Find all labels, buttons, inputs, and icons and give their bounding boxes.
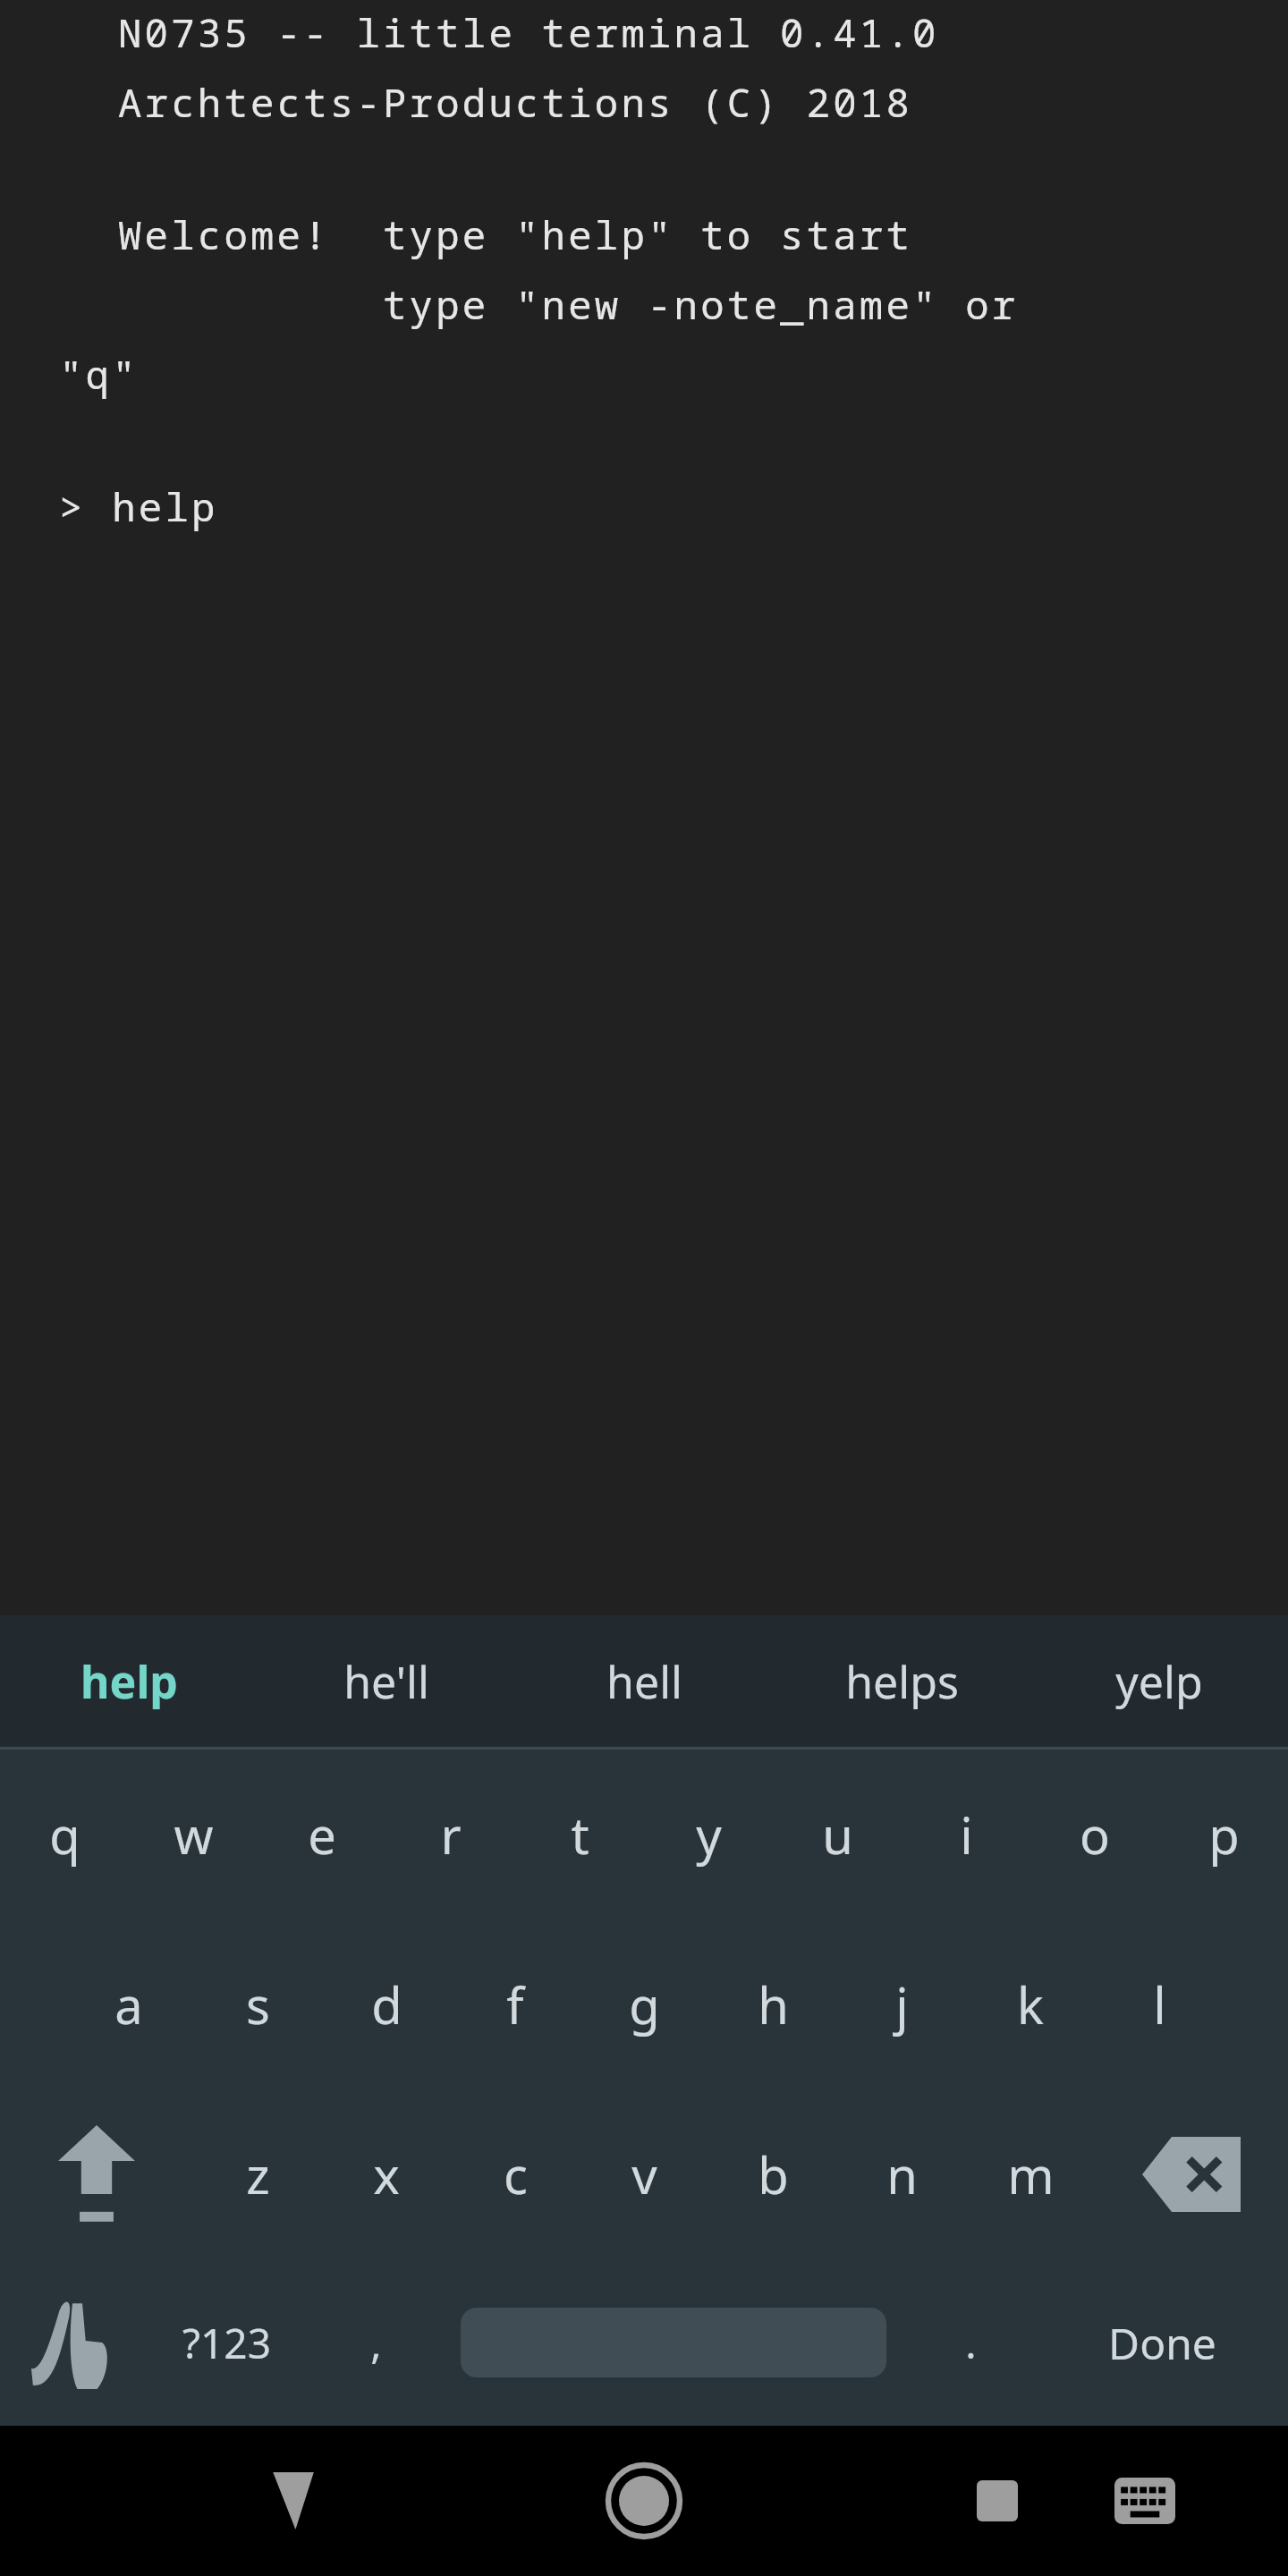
button[interactable]: c	[451, 2089, 580, 2259]
staticText: v	[631, 2140, 657, 2208]
button[interactable]: m	[966, 2089, 1095, 2259]
button[interactable]: w	[129, 1750, 258, 1919]
button[interactable]: hell	[515, 1615, 773, 1747]
staticText: i	[960, 1801, 973, 1868]
staticText: help	[80, 1651, 178, 1712]
button[interactable]: Recent apps	[944, 2447, 1051, 2555]
button[interactable]: i	[902, 1750, 1030, 1919]
button[interactable]: u	[773, 1750, 902, 1919]
staticText: he'll	[343, 1651, 429, 1712]
staticText: h	[758, 1970, 789, 2038]
staticText: l	[1153, 1970, 1166, 2038]
button[interactable]: y	[644, 1750, 773, 1919]
staticText: u	[822, 1801, 853, 1868]
button[interactable]: Shift	[0, 2089, 193, 2259]
button[interactable]: e	[258, 1750, 386, 1919]
button[interactable]: q	[0, 1750, 129, 1919]
staticText: "q"	[59, 347, 139, 401]
button[interactable]: Hide keyboard	[240, 2447, 347, 2555]
button[interactable]: f	[451, 1919, 580, 2089]
staticText: n	[886, 2140, 918, 2208]
staticText: c	[504, 2140, 528, 2208]
staticText: s	[246, 1970, 270, 2038]
staticText: k	[1017, 1970, 1044, 2038]
staticText: ?123	[182, 2315, 271, 2371]
button[interactable]: ,	[309, 2259, 442, 2426]
staticText: Welcome! type "help" to start	[118, 208, 912, 261]
button[interactable]: k	[966, 1919, 1095, 2089]
staticText: d	[371, 1970, 402, 2038]
staticText: w	[174, 1801, 214, 1868]
staticText: t	[571, 1801, 589, 1868]
staticText: m	[1007, 2140, 1055, 2208]
button[interactable]: b	[708, 2089, 837, 2259]
staticText: f	[506, 1970, 524, 2038]
staticText: .	[965, 2315, 977, 2371]
button[interactable]: d	[322, 1919, 451, 2089]
staticText: o	[1080, 1801, 1110, 1868]
button[interactable]: v	[580, 2089, 708, 2259]
button[interactable]: l	[1095, 1919, 1224, 2089]
button[interactable]: Switch keyboard	[1091, 2447, 1199, 2555]
staticText: z	[246, 2140, 270, 2208]
button[interactable]: Backspace	[1095, 2089, 1288, 2259]
staticText: a	[114, 1970, 143, 2038]
button[interactable]: a	[64, 1919, 193, 2089]
button[interactable]: ?123	[144, 2259, 309, 2426]
staticText: N0735 -- little terminal 0.41.0	[118, 5, 939, 59]
button[interactable]: r	[386, 1750, 515, 1919]
button[interactable]: h	[708, 1919, 837, 2089]
staticText: e	[308, 1801, 336, 1868]
button[interactable]: Done	[1037, 2259, 1288, 2426]
button[interactable]: n	[837, 2089, 966, 2259]
staticText: g	[629, 1970, 660, 2038]
staticText: b	[758, 2140, 789, 2208]
staticText: j	[895, 1970, 909, 2038]
button[interactable]: s	[193, 1919, 322, 2089]
staticText: q	[49, 1801, 80, 1868]
button[interactable]: o	[1030, 1750, 1159, 1919]
button[interactable]: z	[193, 2089, 322, 2259]
button[interactable]: help	[0, 1615, 258, 1747]
button[interactable]: x	[322, 2089, 451, 2259]
staticText: y	[696, 1801, 722, 1868]
button[interactable]: yelp	[1030, 1615, 1288, 1747]
button[interactable]	[442, 2259, 904, 2426]
button[interactable]: he'll	[258, 1615, 515, 1747]
button[interactable]: g	[580, 1919, 708, 2089]
staticText: x	[373, 2140, 400, 2208]
staticText: yelp	[1115, 1651, 1203, 1712]
button[interactable]: .	[904, 2259, 1037, 2426]
button[interactable]: t	[515, 1750, 644, 1919]
staticText: Done	[1108, 2314, 1216, 2372]
button[interactable]: Handwriting input	[0, 2259, 144, 2426]
staticText: hell	[606, 1651, 682, 1712]
button[interactable]: Home	[586, 2443, 702, 2559]
staticText: helps	[845, 1651, 959, 1712]
staticText: ,	[370, 2315, 382, 2371]
button[interactable]: helps	[773, 1615, 1030, 1747]
staticText: p	[1208, 1801, 1240, 1868]
staticText: > help	[59, 479, 218, 533]
staticText: type "new -note_name" or	[118, 277, 1019, 331]
button[interactable]: p	[1159, 1750, 1288, 1919]
staticText: Archtects-Productions (C) 2018	[118, 75, 912, 129]
staticText: r	[440, 1801, 462, 1868]
button[interactable]: j	[837, 1919, 966, 2089]
